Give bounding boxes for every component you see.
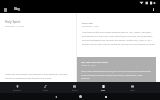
staticText: September 14, 2020 [5,25,24,28]
staticText: Sermons [13,89,21,92]
button[interactable]: Recent apps [93,93,118,100]
button[interactable]: The Flesh and The Spirit [77,57,156,82]
button[interactable]: Sermons [3,82,31,93]
button[interactable]: Blog [89,82,118,93]
button[interactable]: Songs [31,82,60,93]
staticText: Songs [43,89,49,92]
button[interactable]: Back [43,93,68,100]
staticText: Books [72,89,78,92]
staticText: I was born into a family that referred t… [5,73,70,79]
staticText: Blog [14,7,20,11]
button[interactable]: Books [60,82,89,93]
staticText: September 1, 2020 [82,25,99,28]
staticText: Blog [101,89,106,92]
staticText: First Love [82,21,93,24]
staticText: I will never forget that Sunday evening … [82,31,155,45]
staticText: August 25, 2018 [81,64,96,67]
staticText: The Flesh and The Spirit [81,60,108,63]
button[interactable]: Home [68,93,93,100]
staticText: Holy Spirit [5,20,21,24]
button[interactable]: Open navigation drawer [4,8,7,11]
button[interactable]: More [118,82,147,93]
button[interactable]: More options [152,8,155,11]
staticText: More [130,89,135,92]
staticText: Many have mentioned Psalm 23, but how ma… [81,70,151,79]
